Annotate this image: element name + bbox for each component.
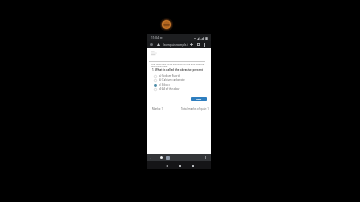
button[interactable]: Tab (160, 156, 163, 159)
staticText: quiz ends now. (151, 64, 168, 67)
button[interactable]: Account (150, 43, 153, 46)
button[interactable]: Next (191, 97, 207, 101)
staticText: Next (196, 98, 202, 101)
staticText: Marks: 1 (152, 107, 164, 111)
staticText: a) Sodium fluorid (159, 74, 180, 78)
staticText: 11:04 ✉ (151, 36, 163, 40)
staticText: b) Calcium carbonate (159, 78, 185, 82)
button[interactable]: More options (202, 42, 207, 47)
staticText: The time limit is 60 minutes for the qui… (151, 62, 205, 65)
button[interactable]: Home (177, 163, 182, 168)
button[interactable]: Back (149, 156, 152, 159)
button[interactable]: c) Silica x (154, 83, 194, 87)
staticText: c) Silica x (159, 83, 170, 87)
staticText: ‹ (150, 156, 152, 159)
staticText: learnquiz.example.in/q5 (163, 43, 188, 47)
button[interactable]: d) All of the abov (154, 87, 194, 91)
button[interactable]: Apps (166, 156, 170, 160)
button[interactable]: a) Sodium fluorid (154, 74, 194, 78)
staticText: d) All of the abov (159, 87, 180, 91)
button[interactable]: b) Calcium carbonate (154, 78, 194, 82)
button[interactable]: Recents (190, 163, 195, 168)
button[interactable]: Back (164, 163, 169, 168)
staticText: 1. What is called the abrasive present (152, 68, 204, 72)
staticText: Total marks of quiz: 1 (181, 107, 209, 111)
button[interactable]: Menu (204, 156, 207, 159)
button[interactable]: Tabs (196, 42, 201, 47)
button[interactable]: New tab (189, 42, 194, 47)
